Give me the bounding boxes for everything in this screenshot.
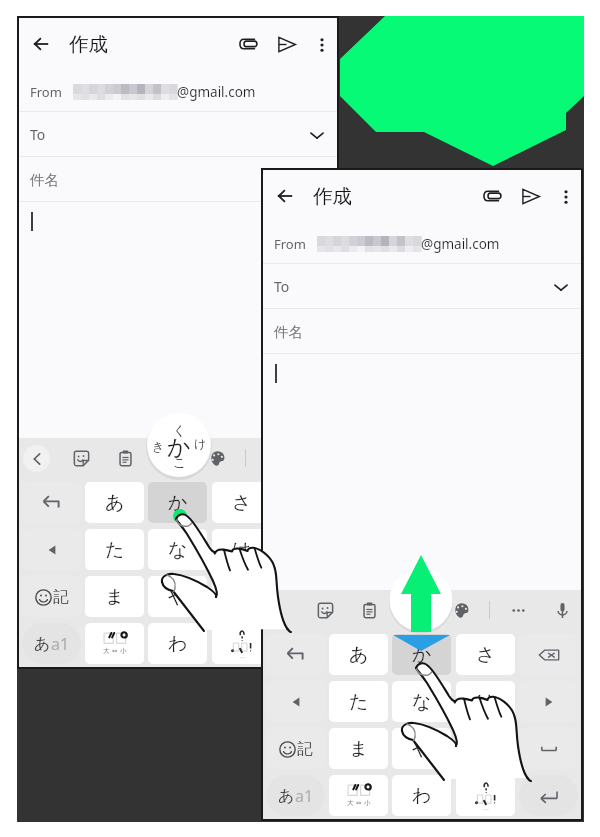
button[interactable]: あ	[329, 634, 388, 675]
button[interactable]	[266, 634, 325, 675]
staticText: 小	[120, 647, 127, 655]
staticText: 件名	[274, 323, 303, 341]
button[interactable]	[519, 634, 578, 675]
button[interactable]: ら	[456, 728, 515, 769]
button[interactable]: 記	[22, 576, 81, 617]
staticText: あ	[278, 786, 295, 806]
button[interactable]: Back	[17, 20, 65, 68]
staticText: ま	[349, 737, 369, 761]
button[interactable]: ら	[212, 576, 271, 617]
button[interactable]: Attach file	[229, 25, 267, 63]
button[interactable]: Stickers	[312, 597, 339, 624]
staticText: ⇔	[356, 799, 362, 807]
staticText: 大	[347, 799, 354, 807]
staticText: 記	[53, 587, 69, 607]
button[interactable]	[22, 482, 81, 523]
button[interactable]: や	[148, 576, 207, 617]
button[interactable]: Attach file	[473, 177, 511, 215]
button[interactable]: More options	[505, 597, 532, 624]
staticText: な	[412, 690, 432, 714]
button[interactable]	[519, 681, 578, 722]
staticText: わ	[168, 632, 188, 656]
button[interactable]: More options	[549, 180, 582, 213]
staticText: From	[30, 83, 62, 101]
button[interactable]: あ	[22, 623, 81, 664]
staticText: 作成	[313, 184, 352, 209]
button[interactable]: 大	[329, 775, 388, 816]
button[interactable]: あ	[85, 482, 144, 523]
staticText: From	[274, 235, 306, 253]
button[interactable]	[275, 576, 334, 617]
button[interactable]: は	[212, 529, 271, 570]
staticText: か	[167, 433, 191, 459]
button[interactable]	[266, 681, 325, 722]
staticText: ま	[105, 585, 125, 609]
staticText: 大	[103, 647, 110, 655]
staticText: く	[173, 422, 187, 438]
button[interactable]: Clipboard	[356, 597, 383, 624]
button[interactable]	[519, 728, 578, 769]
staticText: は	[232, 538, 252, 562]
staticText: あ	[105, 491, 125, 515]
button[interactable]: ま	[85, 576, 144, 617]
staticText: か	[412, 643, 432, 667]
staticText: ⇔	[112, 647, 118, 655]
staticText: さ	[232, 491, 252, 515]
button[interactable]	[275, 529, 334, 570]
button[interactable]: More options	[305, 28, 338, 61]
button[interactable]: か	[392, 634, 451, 675]
staticText: さ	[476, 643, 496, 667]
button[interactable]: わ	[148, 623, 207, 664]
button[interactable]: Stickers	[68, 445, 95, 472]
staticText: 作成	[69, 32, 108, 57]
button[interactable]	[456, 775, 515, 816]
button[interactable]: Send	[511, 177, 549, 215]
button[interactable]: To	[17, 112, 339, 157]
button[interactable]: ま	[329, 728, 388, 769]
staticText: こ	[173, 454, 187, 470]
staticText: や	[168, 585, 188, 609]
staticText: To	[30, 125, 46, 144]
button[interactable]: Back	[261, 172, 309, 220]
button[interactable]: さ	[212, 482, 271, 523]
staticText: や	[412, 737, 432, 761]
staticText: け	[194, 436, 207, 451]
staticText: あ	[349, 643, 369, 667]
staticText: 件名	[30, 171, 59, 189]
button[interactable]: か	[148, 482, 207, 523]
staticText: @gmail.com	[421, 235, 500, 253]
button[interactable]	[22, 529, 81, 570]
button[interactable]: Theme	[448, 597, 475, 624]
button[interactable]: わ	[392, 775, 451, 816]
button[interactable]: な	[148, 529, 207, 570]
button[interactable]: 記	[266, 728, 325, 769]
button[interactable]: た	[85, 529, 144, 570]
button[interactable]	[275, 623, 334, 664]
staticText: a1	[51, 633, 70, 655]
button[interactable]: な	[392, 681, 451, 722]
staticText: わ	[412, 784, 432, 808]
button[interactable]: 大	[85, 623, 144, 664]
button[interactable]: あ	[266, 775, 325, 816]
button[interactable]	[212, 623, 271, 664]
staticText: た	[105, 538, 125, 562]
staticText: た	[349, 690, 369, 714]
button[interactable]: Theme	[204, 445, 231, 472]
staticText: 小	[364, 799, 371, 807]
button[interactable]: は	[456, 681, 515, 722]
button[interactable]: や	[392, 728, 451, 769]
staticText: か	[168, 491, 188, 515]
button[interactable]	[519, 775, 578, 816]
button[interactable]: Previous	[23, 445, 50, 472]
button[interactable]: Clipboard	[112, 445, 139, 472]
button[interactable]: Send	[267, 25, 305, 63]
button[interactable]: Voice input	[549, 597, 576, 624]
button[interactable]: さ	[456, 634, 515, 675]
staticText: 記	[297, 739, 313, 759]
button[interactable]: た	[329, 681, 388, 722]
staticText: は	[476, 690, 496, 714]
button[interactable]: To	[261, 264, 583, 309]
